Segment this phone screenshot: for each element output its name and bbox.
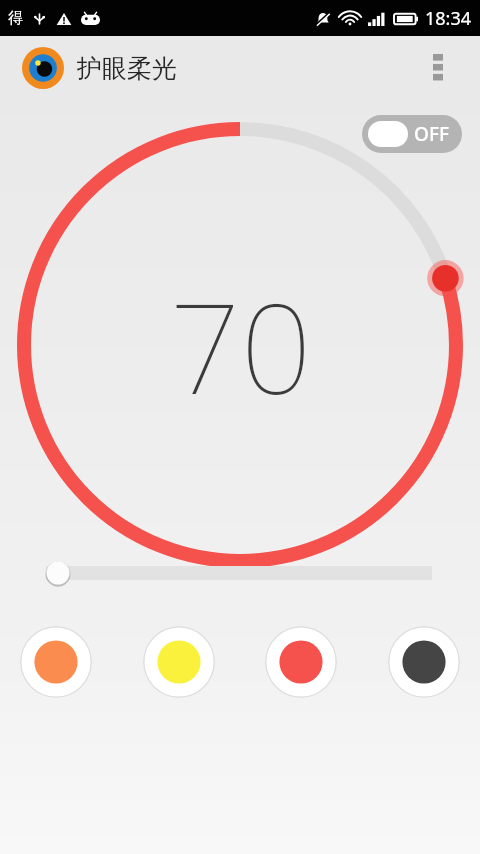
- button[interactable]: Yellow filter: [143, 626, 215, 698]
- staticText: OFF: [414, 121, 449, 147]
- button[interactable]: Red filter: [265, 626, 337, 698]
- staticText: 70: [169, 260, 312, 430]
- button[interactable]: OFF: [362, 115, 462, 153]
- button[interactable]: Brightness slider: [0, 550, 480, 596]
- button[interactable]: Orange filter: [20, 626, 92, 698]
- staticText: 18:34: [425, 6, 472, 31]
- button[interactable]: More options: [418, 48, 458, 88]
- staticText: 得: [8, 9, 23, 28]
- button[interactable]: Dark filter: [388, 626, 460, 698]
- staticText: 护眼柔光: [77, 53, 177, 84]
